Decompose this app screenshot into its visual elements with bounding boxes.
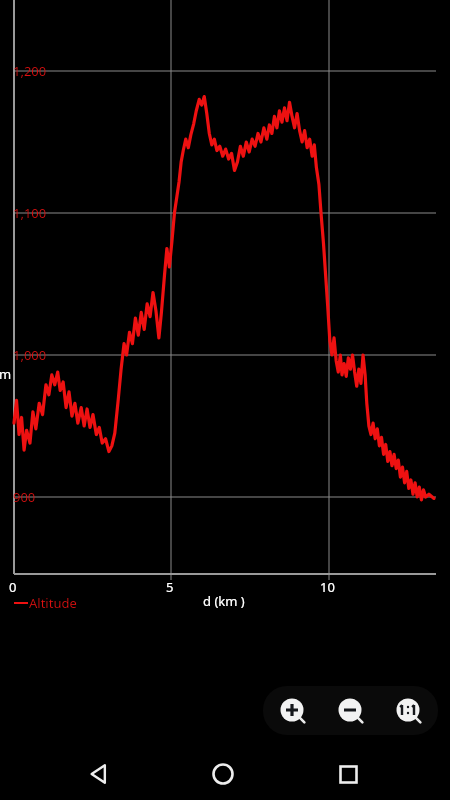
- button[interactable]: Recent apps: [324, 750, 372, 798]
- staticText: 0: [9, 578, 17, 596]
- staticText: 900: [13, 488, 36, 506]
- staticText: 1,000: [13, 346, 47, 364]
- staticText: 5: [166, 578, 174, 596]
- button[interactable]: Back: [76, 750, 124, 798]
- staticText: Altitude: [29, 594, 77, 612]
- staticText: m: [0, 365, 12, 383]
- staticText: 10: [320, 578, 335, 596]
- staticText: 1,100: [13, 204, 47, 222]
- staticText: d (km ): [203, 592, 245, 610]
- button[interactable]: Home: [199, 750, 247, 798]
- button[interactable]: Zoom in: [263, 686, 321, 735]
- staticText: 1,200: [13, 62, 47, 80]
- button[interactable]: Reset zoom: [379, 686, 437, 735]
- button[interactable]: Zoom out: [321, 686, 379, 735]
